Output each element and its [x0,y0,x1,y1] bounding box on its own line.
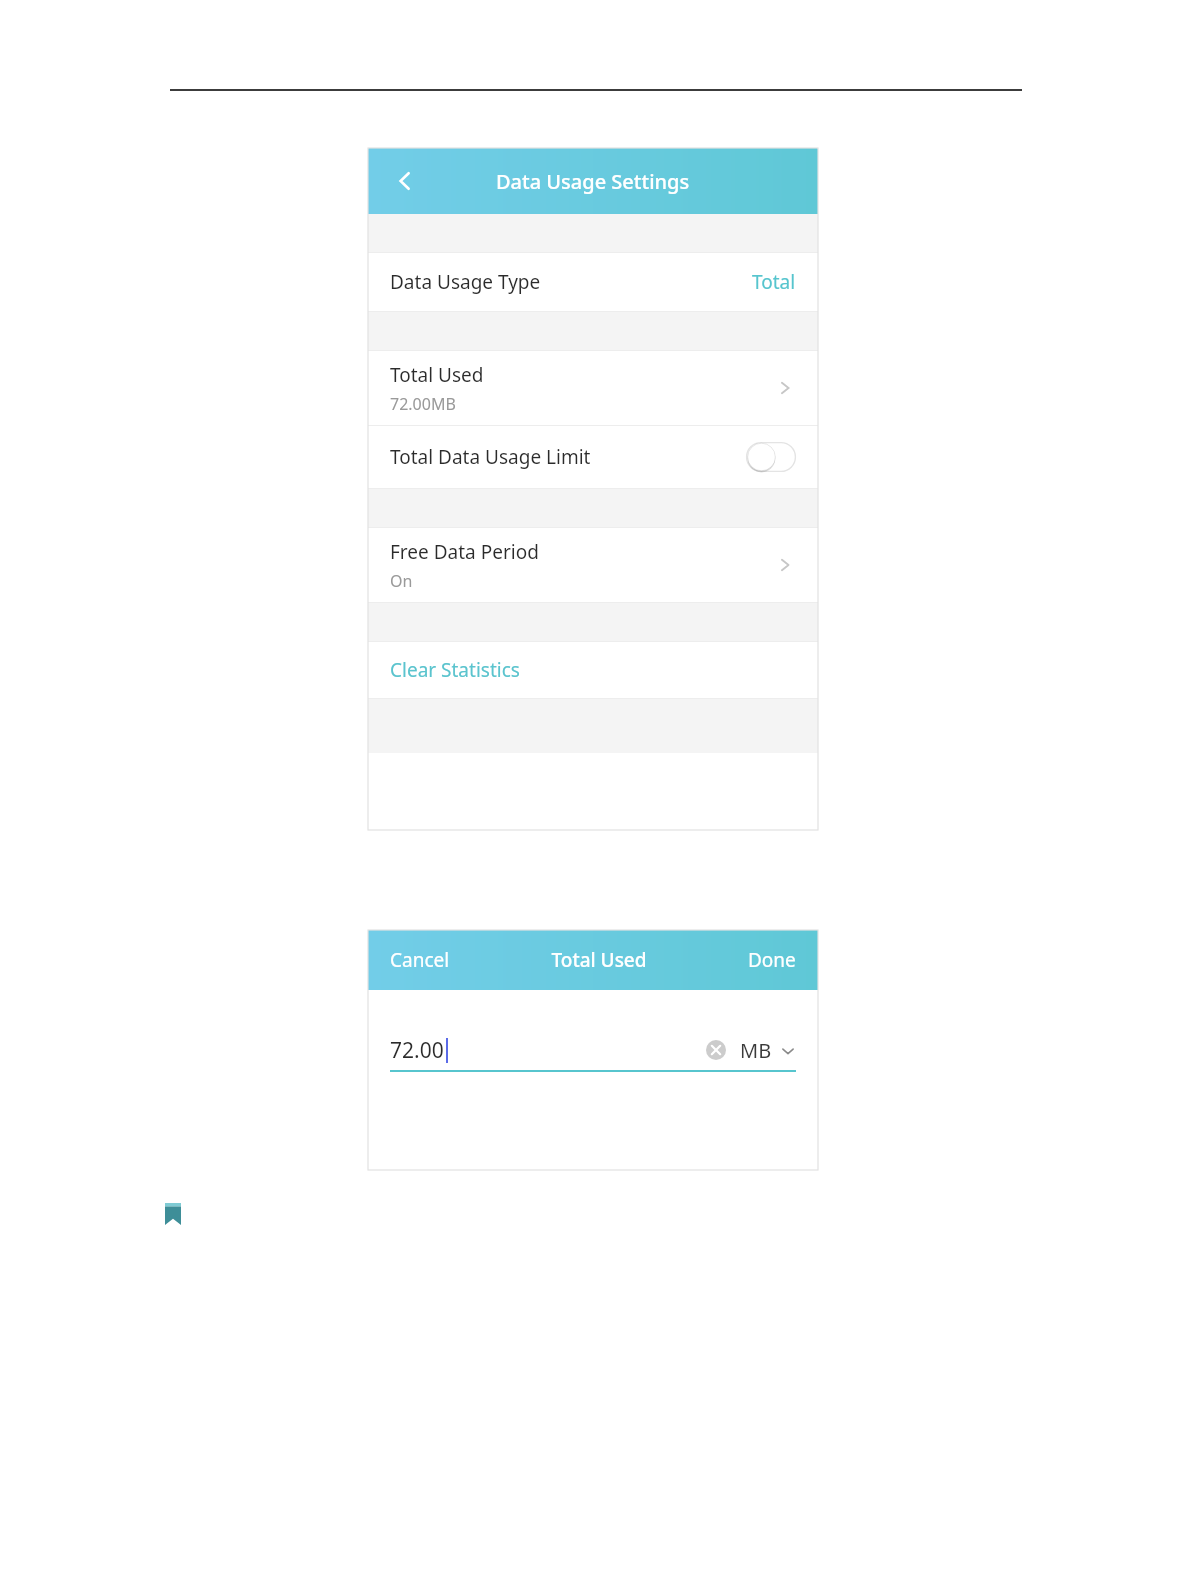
staticText: Total Used [551,947,647,973]
button[interactable]: Back [384,160,426,202]
staticText: Done [748,947,796,973]
staticText: Data Usage Settings [496,168,690,195]
button[interactable]: Total Used [368,351,818,425]
staticText: Cancel [390,947,450,973]
staticText: 72.00 [390,1036,444,1065]
button[interactable]: Free Data Period [368,528,818,602]
button[interactable]: Data Usage Type [368,253,818,311]
button[interactable]: Total Data Usage Limit [368,426,818,488]
button[interactable]: Clear Statistics [368,642,818,698]
button[interactable]: MB [740,1031,796,1070]
staticText: On [390,570,413,592]
staticText: Total [752,269,796,295]
staticText: 72.00MB [390,393,456,415]
staticText: Free Data Period [390,539,539,565]
button[interactable]: Clear text [706,1040,726,1060]
staticText: Clear Statistics [390,657,520,683]
button[interactable]: Bookmark [165,1203,181,1225]
button[interactable]: Total Data Usage Limit toggle [746,442,796,472]
staticText: Total Data Usage Limit [390,444,591,470]
button[interactable]: Cancel [368,937,472,983]
button[interactable]: Done [726,937,818,983]
staticText: MB [740,1037,772,1064]
staticText: Data Usage Type [390,269,541,295]
staticText: Total Used [390,362,484,388]
